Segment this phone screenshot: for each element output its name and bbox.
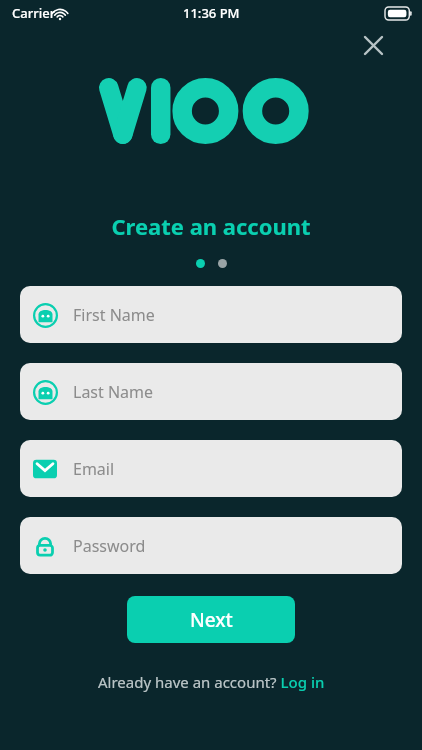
button[interactable]: Email <box>20 440 402 497</box>
staticText: Last Name <box>73 381 154 403</box>
staticText: 11:36 PM <box>183 4 240 22</box>
staticText: Create an account <box>111 211 311 241</box>
button[interactable]: Already have an account? Log in <box>98 672 325 692</box>
button[interactable]: Next <box>127 596 295 643</box>
staticText: Carrier <box>12 4 56 22</box>
button[interactable]: Password <box>20 517 402 574</box>
button[interactable]: Last Name <box>20 363 402 420</box>
staticText: Email <box>73 458 115 480</box>
staticText: Next <box>190 607 233 633</box>
staticText: First Name <box>73 304 155 326</box>
staticText: Password <box>73 535 146 557</box>
staticText: Already have an account? Log in <box>98 672 325 692</box>
button[interactable]: First Name <box>20 286 402 343</box>
button[interactable]: Close <box>357 29 389 61</box>
